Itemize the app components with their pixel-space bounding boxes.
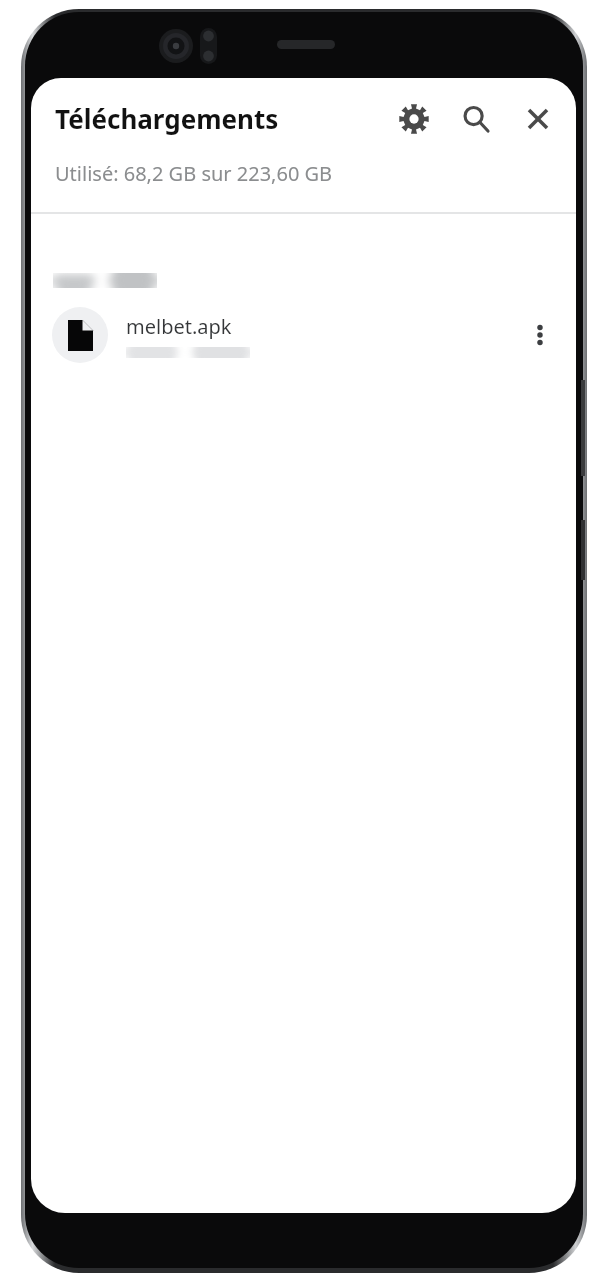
button[interactable]: Settings	[388, 93, 440, 145]
button[interactable]: Search	[450, 93, 502, 145]
staticText: melbet.apk	[126, 313, 232, 340]
button[interactable]: Close	[512, 93, 564, 145]
staticText: Utilisé: 68,2 GB sur 223,60 GB	[55, 160, 333, 187]
button[interactable]: melbet.apk	[31, 298, 576, 372]
button[interactable]: More options	[514, 309, 566, 361]
staticText: Téléchargements	[55, 101, 279, 136]
